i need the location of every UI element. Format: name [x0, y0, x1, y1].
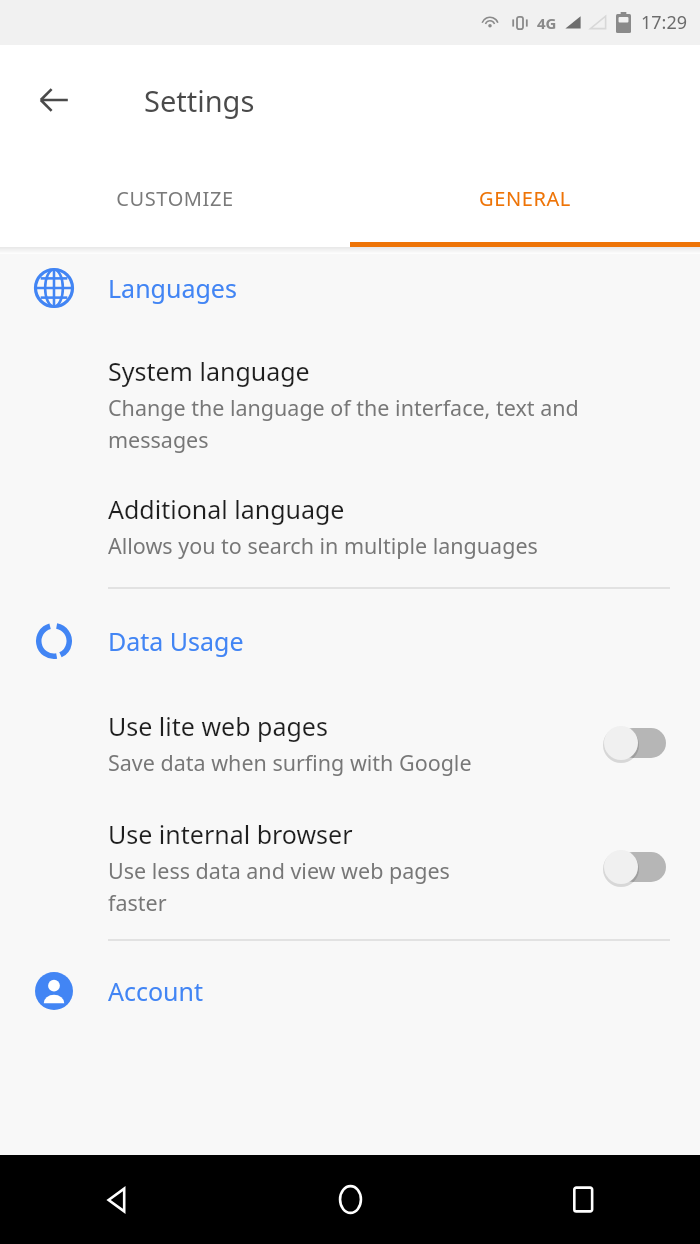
button[interactable]: Data Usage [0, 615, 700, 667]
button[interactable]: Languages [0, 262, 700, 314]
button[interactable]: Home [234, 1155, 467, 1244]
staticText: GENERAL [479, 185, 571, 212]
button[interactable]: Use lite web pages [602, 720, 674, 766]
staticText: Allows you to search in multiple languag… [108, 531, 538, 560]
staticText: Use internal browser [108, 817, 353, 851]
button[interactable]: Recent apps [467, 1155, 700, 1244]
staticText: Data Usage [108, 624, 244, 658]
staticText: 17:29 [641, 10, 688, 35]
button[interactable]: Use internal browser [0, 817, 700, 917]
staticText: Change the language of the interface, te… [108, 393, 579, 454]
staticText: Use lite web pages [108, 709, 328, 743]
staticText: CUSTOMIZE [116, 185, 234, 212]
button[interactable]: Account [0, 965, 700, 1017]
staticText: Languages [108, 271, 237, 305]
button[interactable]: Back [0, 1155, 234, 1244]
button[interactable]: GENERAL [350, 155, 700, 242]
staticText: Settings [144, 81, 255, 120]
staticText: System language [108, 354, 310, 388]
staticText: Use less data and view web pages faster [108, 856, 450, 917]
staticText: Account [108, 974, 204, 1008]
staticText: Save data when surfing with Google [108, 748, 472, 777]
staticText: 4G [537, 13, 557, 33]
staticText: Additional language [108, 492, 345, 526]
button[interactable]: Back [22, 68, 86, 132]
button[interactable]: CUSTOMIZE [0, 155, 350, 242]
button[interactable]: Use lite web pages [0, 709, 700, 777]
button[interactable]: Additional language [0, 492, 700, 560]
button[interactable]: Use internal browser [602, 844, 674, 890]
button[interactable]: System language [0, 354, 700, 454]
